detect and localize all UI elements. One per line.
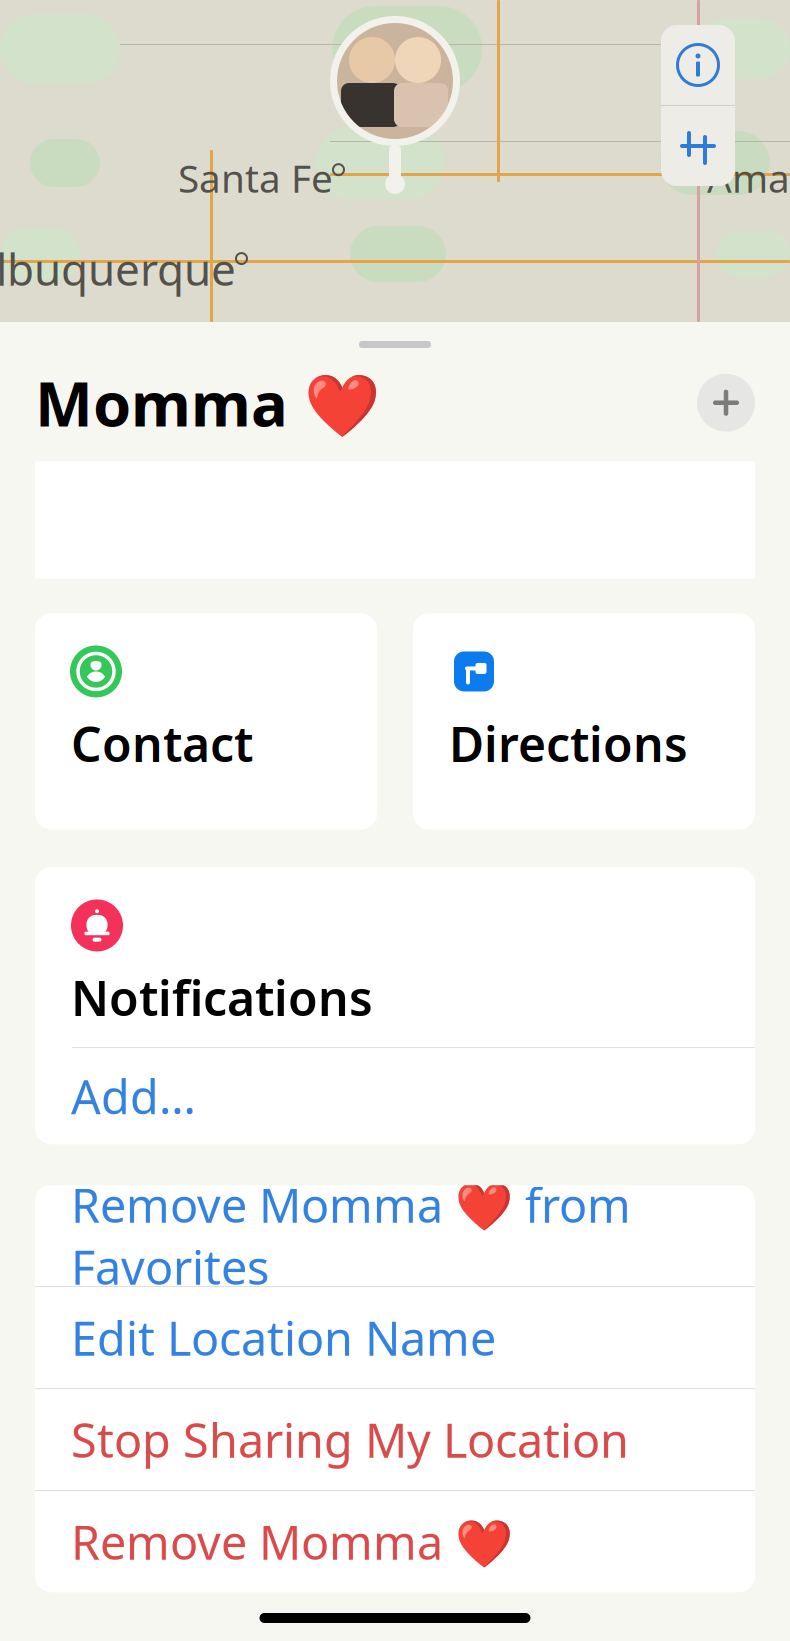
staticText: Directions: [449, 711, 688, 775]
staticText: Contact: [71, 711, 253, 775]
button[interactable]: Add…: [35, 1048, 755, 1144]
button[interactable]: Center on current location: [661, 106, 735, 186]
staticText: Santa Fe: [178, 152, 333, 203]
staticText: Momma ❤️: [35, 362, 380, 443]
staticText: Ama: [707, 152, 790, 203]
staticText: Add…: [71, 1065, 196, 1127]
button[interactable]: Remove Momma ❤️ from Favorites: [35, 1185, 755, 1286]
button[interactable]: Close: [697, 374, 755, 432]
staticText: Stop Sharing My Location: [71, 1409, 629, 1471]
button[interactable]: Notifications: [35, 867, 755, 1047]
staticText: Remove Momma ❤️ from Favorites: [71, 1174, 631, 1298]
button[interactable]: Directions: [413, 613, 755, 829]
staticText: Notifications: [71, 965, 373, 1029]
button[interactable]: Map Information: [661, 25, 735, 105]
staticText: lbuquerque: [0, 239, 236, 298]
staticText: Edit Location Name: [71, 1307, 496, 1369]
button[interactable]: Contact: [35, 613, 377, 829]
button[interactable]: Remove Momma ❤️: [35, 1491, 755, 1592]
staticText: Remove Momma ❤️: [71, 1511, 513, 1573]
button[interactable]: Edit Location Name: [35, 1287, 755, 1388]
button[interactable]: Stop Sharing My Location: [35, 1389, 755, 1490]
